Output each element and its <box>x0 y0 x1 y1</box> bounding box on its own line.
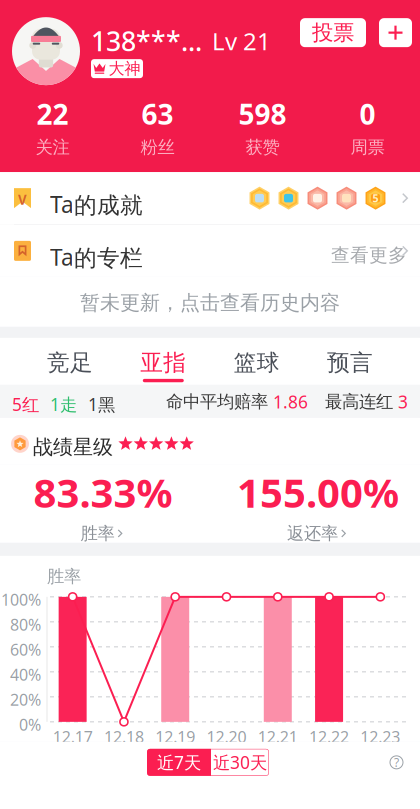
staticText: 1.86 <box>273 390 308 413</box>
button[interactable]: Help <box>390 756 403 769</box>
staticText: 最高连红 <box>325 391 393 412</box>
button[interactable]: 预言 <box>303 338 397 385</box>
button[interactable]: 投票 <box>300 18 366 47</box>
staticText: 0 <box>359 95 375 133</box>
staticText: 1走 <box>50 393 77 416</box>
staticText: 12.22 <box>309 726 349 747</box>
button[interactable]: 近30天 <box>211 749 269 776</box>
staticText: ? <box>394 754 399 770</box>
staticText: 投票 <box>312 19 354 46</box>
staticText: 0% <box>19 714 41 735</box>
staticText: 12.18 <box>104 726 144 747</box>
staticText: Ta的专栏 <box>50 242 143 272</box>
staticText: 1黑 <box>88 393 115 416</box>
staticText: 获赞 <box>245 137 279 158</box>
button[interactable]: Ta的专栏 <box>0 225 420 277</box>
button[interactable]: 篮球 <box>210 338 303 385</box>
staticText: 命中平均赔率 <box>166 391 268 412</box>
staticText: 5 <box>372 191 378 205</box>
button[interactable]: 返还率 <box>287 523 349 544</box>
staticText: 12.17 <box>53 726 93 747</box>
staticText: 查看更多 <box>331 244 407 267</box>
staticText: 近30天 <box>213 751 267 774</box>
button[interactable]: 近7天 <box>147 749 211 776</box>
staticText: 粉丝 <box>140 137 174 158</box>
button[interactable]: 竞足 <box>23 338 117 385</box>
staticText: 100% <box>1 589 41 610</box>
staticText: 80% <box>10 614 41 635</box>
staticText: 63 <box>141 95 173 133</box>
staticText: 138***... <box>91 23 202 58</box>
staticText: 胜率 <box>80 523 114 544</box>
staticText: 返还率 <box>287 523 338 544</box>
button[interactable]: 大神 <box>91 59 143 78</box>
staticText: 22 <box>36 95 68 133</box>
staticText: 12.23 <box>360 726 400 747</box>
button[interactable]: 胜率 <box>80 523 125 544</box>
staticText: 60% <box>10 639 41 660</box>
staticText: 关注 <box>35 137 69 158</box>
staticText: 20% <box>10 689 41 710</box>
staticText: 155.00% <box>237 466 399 519</box>
staticText: 12.21 <box>258 726 298 747</box>
staticText: 篮球 <box>234 349 280 377</box>
staticText: Ta的成就 <box>50 189 143 219</box>
staticText: 周票 <box>350 137 384 158</box>
staticText: 12.19 <box>155 726 195 747</box>
staticText: 竞足 <box>47 349 93 377</box>
staticText: 战绩星级 <box>33 435 113 459</box>
staticText: 亚指 <box>140 349 186 377</box>
button[interactable]: 亚指 <box>117 338 210 385</box>
staticText: 598 <box>238 95 286 133</box>
staticText: 胜率 <box>47 566 81 587</box>
button[interactable]: V <box>0 172 420 224</box>
staticText: 预言 <box>327 349 373 377</box>
staticText: 3 <box>398 390 408 413</box>
staticText: 83.33% <box>33 466 172 519</box>
staticText: V <box>18 191 27 208</box>
staticText: 40% <box>10 664 41 685</box>
staticText: 暂未更新，点击查看历史内容 <box>80 291 340 315</box>
button[interactable]: Add <box>379 18 412 47</box>
staticText: 大神 <box>108 59 140 78</box>
staticText: 近7天 <box>157 751 201 774</box>
staticText: Lv 21 <box>212 25 271 57</box>
staticText: 5红 <box>12 393 39 416</box>
staticText: 12.20 <box>206 726 246 747</box>
